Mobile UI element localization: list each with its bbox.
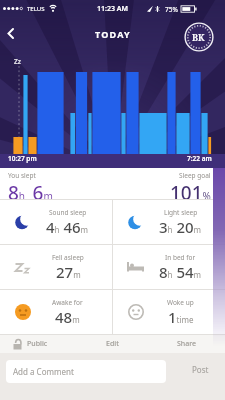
- button[interactable]: Share: [177, 339, 197, 349]
- button[interactable]: Post: [192, 364, 209, 375]
- button[interactable]: Light sleep: [113, 200, 225, 244]
- staticText: 7:22 am: [187, 154, 212, 163]
- staticText: Sleep goal: [179, 171, 211, 180]
- staticText: 3h 20m: [159, 217, 202, 237]
- button[interactable]: Public: [27, 339, 48, 349]
- staticText: You slept: [8, 171, 36, 180]
- staticText: Light sleep: [164, 208, 198, 217]
- staticText: Post: [192, 364, 209, 375]
- button[interactable]: TODAY: [95, 28, 131, 40]
- staticText: 8h 6m: [8, 180, 53, 199]
- button[interactable]: Awake for: [0, 290, 112, 334]
- button[interactable]: In bed for: [113, 245, 225, 289]
- button[interactable]: Woke up: [113, 290, 225, 334]
- button[interactable]: Sound sleep: [0, 200, 112, 244]
- staticText: Fell asleep: [52, 253, 84, 262]
- staticText: In bed for: [165, 253, 196, 262]
- button[interactable]: You slept: [0, 168, 225, 199]
- staticText: 11:23 AM: [97, 4, 128, 14]
- staticText: 1time: [168, 307, 194, 327]
- button[interactable]: Fell asleep: [0, 245, 112, 289]
- staticText: 4h 46m: [46, 217, 89, 237]
- staticText: 101%: [170, 180, 211, 199]
- button[interactable]: Edit: [106, 339, 119, 349]
- staticText: Awake for: [52, 298, 83, 307]
- staticText: TELUS: [27, 5, 45, 13]
- staticText: Woke up: [167, 298, 194, 307]
- staticText: Sound sleep: [49, 208, 87, 217]
- staticText: 75%: [165, 5, 178, 14]
- button[interactable]: Add a Comment: [6, 360, 166, 383]
- staticText: Zz: [14, 57, 21, 66]
- staticText: 10:27 pm: [8, 154, 37, 163]
- staticText: 27m: [56, 262, 81, 282]
- staticText: Edit: [106, 339, 119, 349]
- staticText: Share: [177, 339, 197, 349]
- staticText: 8h 54m: [159, 262, 202, 282]
- staticText: Public: [27, 339, 48, 349]
- staticText: Add a Comment: [13, 366, 74, 377]
- staticText: 48m: [55, 307, 80, 327]
- staticText: BK: [192, 31, 205, 43]
